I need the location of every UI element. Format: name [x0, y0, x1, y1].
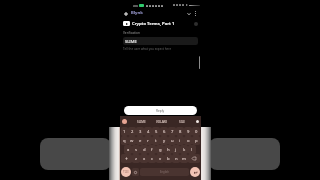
staticText: b: [167, 156, 170, 162]
staticText: o: [187, 138, 190, 144]
staticText: j: [175, 147, 177, 153]
button[interactable]: z: [132, 154, 140, 163]
staticText: Tell the user what you expect here: [123, 47, 172, 51]
button[interactable]: 9: [184, 127, 192, 136]
button[interactable]: p: [192, 136, 200, 145]
button[interactable]: s: [132, 145, 140, 154]
button[interactable]: 7: [168, 127, 176, 136]
button[interactable]: Expand: [185, 10, 192, 17]
staticText: m: [182, 156, 186, 162]
staticText: SLIME: [137, 120, 146, 124]
staticText: u: [171, 138, 174, 144]
staticText: s: [135, 147, 138, 153]
button[interactable]: w: [128, 136, 136, 145]
staticText: Reply: [156, 109, 165, 113]
staticText: n: [175, 156, 178, 162]
staticText: VOLARE: [156, 120, 168, 124]
staticText: w: [130, 138, 134, 144]
staticText: 2: [131, 129, 134, 135]
button[interactable]: v: [156, 154, 164, 163]
staticText: 3: [139, 129, 142, 135]
button[interactable]: t: [152, 136, 160, 145]
button[interactable]: a: [124, 145, 132, 154]
button[interactable]: c: [148, 154, 156, 163]
staticText: ?123: [123, 170, 129, 174]
button[interactable]: Symbols: [121, 167, 131, 177]
button[interactable]: y: [160, 136, 168, 145]
staticText: f: [151, 147, 153, 153]
button[interactable]: Add: [122, 10, 129, 17]
button[interactable]: 3: [136, 127, 144, 136]
button[interactable]: q: [121, 136, 128, 145]
button[interactable]: 6: [160, 127, 168, 136]
button[interactable]: i: [176, 136, 184, 145]
staticText: i: [179, 138, 181, 144]
staticText: 7: [171, 129, 174, 135]
staticText: Crypto Terms, Part 1: [132, 21, 175, 27]
staticText: x: [143, 156, 146, 162]
staticText: 4: [147, 129, 150, 135]
staticText: 9: [187, 129, 190, 135]
staticText: 5: [155, 129, 158, 135]
staticText: z: [135, 156, 137, 162]
button[interactable]: r: [144, 136, 152, 145]
staticText: d: [143, 147, 146, 153]
button[interactable]: Reply: [124, 106, 197, 115]
staticText: English: [160, 170, 169, 174]
button[interactable]: u: [168, 136, 176, 145]
staticText: l: [191, 147, 193, 153]
button[interactable]: j: [172, 145, 180, 154]
button[interactable]: 5: [152, 127, 160, 136]
staticText: SLIME: [125, 39, 137, 44]
button[interactable]: 1: [121, 127, 128, 136]
button[interactable]: e: [136, 136, 144, 145]
button[interactable]: d: [140, 145, 148, 154]
button[interactable]: l: [188, 145, 196, 154]
button[interactable]: More options: [192, 10, 199, 17]
button[interactable]: 8: [176, 127, 184, 136]
staticText: e: [139, 138, 142, 144]
button[interactable]: m: [180, 154, 188, 163]
staticText: h: [167, 147, 170, 153]
button[interactable]: g: [156, 145, 164, 154]
staticText: Blynk: [131, 10, 143, 16]
staticText: 0: [195, 129, 198, 135]
button[interactable]: x: [140, 154, 148, 163]
staticText: k: [183, 147, 186, 153]
staticText: a: [127, 147, 130, 153]
staticText: t: [155, 138, 157, 144]
button[interactable]: k: [180, 145, 188, 154]
button[interactable]: o: [184, 136, 192, 145]
staticText: 6: [163, 129, 166, 135]
button[interactable]: Enter: [190, 167, 200, 177]
staticText: g: [159, 147, 162, 153]
button[interactable]: n: [172, 154, 180, 163]
staticText: SILE: [179, 120, 185, 124]
staticText: y: [163, 138, 166, 144]
button[interactable]: 2: [128, 127, 136, 136]
button[interactable]: 0: [192, 127, 200, 136]
button[interactable]: Emoji: [132, 168, 139, 176]
button[interactable]: Backspace: [188, 154, 200, 163]
button[interactable]: Settings: [196, 120, 199, 123]
button[interactable]: f: [148, 145, 156, 154]
button[interactable]: h: [164, 145, 172, 154]
button[interactable]: Space: [140, 168, 189, 176]
staticText: q: [123, 138, 126, 144]
staticText: 1: [123, 129, 126, 135]
button[interactable]: 4: [144, 127, 152, 136]
staticText: p: [195, 138, 198, 144]
button[interactable]: SLIME: [123, 37, 198, 45]
button[interactable]: Shift: [121, 154, 132, 163]
button[interactable]: b: [164, 154, 172, 163]
staticText: v: [159, 156, 162, 162]
staticText: c: [151, 156, 154, 162]
button[interactable]: Voice input: [122, 119, 127, 124]
staticText: Verification: [123, 31, 140, 35]
button[interactable]: Profile: [194, 22, 198, 26]
staticText: 8: [179, 129, 182, 135]
staticText: r: [147, 138, 149, 144]
